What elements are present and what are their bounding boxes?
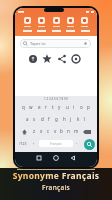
- button[interactable]: l: [84, 116, 86, 122]
- button[interactable]: r: [45, 104, 47, 110]
- button[interactable]: m: [74, 128, 79, 134]
- button[interactable]: [84, 139, 95, 150]
- button[interactable]: x: [40, 128, 43, 134]
- button[interactable]: u: [66, 104, 69, 110]
- staticText: 1 2 3 4 5 6 7 8 9 0: [15, 97, 97, 101]
- button[interactable]: [81, 17, 88, 24]
- button[interactable]: [69, 52, 83, 66]
- button[interactable]: [41, 52, 55, 66]
- button[interactable]: [55, 52, 69, 66]
- button[interactable]: [15, 152, 43, 167]
- button[interactable]: h: [63, 116, 66, 122]
- staticText: Taper ici: [30, 41, 46, 46]
- staticText: Synonyme Français: [0, 170, 112, 182]
- button[interactable]: t: [52, 104, 54, 110]
- button[interactable]: e: [38, 104, 41, 110]
- button[interactable]: Taper ici: [20, 39, 91, 48]
- button[interactable]: p: [87, 104, 90, 110]
- staticText: ,: [33, 139, 35, 145]
- button[interactable]: o: [80, 104, 83, 110]
- button[interactable]: v: [54, 128, 57, 134]
- button[interactable]: b: [60, 128, 63, 134]
- button[interactable]: z: [33, 128, 36, 134]
- button[interactable]: [27, 52, 41, 66]
- button[interactable]: i: [73, 104, 75, 110]
- button[interactable]: n: [67, 128, 70, 134]
- button[interactable]: d: [41, 116, 44, 122]
- button[interactable]: [38, 17, 45, 24]
- button[interactable]: [67, 17, 74, 24]
- button[interactable]: g: [55, 116, 58, 122]
- button[interactable]: f: [48, 116, 50, 122]
- button[interactable]: q: [22, 104, 25, 110]
- button[interactable]: w: [29, 104, 33, 110]
- staticText: .: [76, 139, 78, 145]
- button[interactable]: [53, 17, 60, 24]
- button[interactable]: [70, 152, 97, 167]
- button[interactable]: a: [26, 116, 29, 122]
- staticText: Français: [0, 183, 112, 192]
- staticText: ?123: [19, 141, 27, 146]
- button[interactable]: y: [58, 104, 61, 110]
- button[interactable]: s: [33, 116, 36, 122]
- button[interactable]: Français: [39, 140, 73, 147]
- button[interactable]: [43, 152, 70, 167]
- button[interactable]: j: [70, 116, 72, 122]
- button[interactable]: c: [47, 128, 50, 134]
- button[interactable]: [24, 17, 31, 24]
- staticText: Français: [50, 142, 62, 146]
- button[interactable]: k: [77, 116, 80, 122]
